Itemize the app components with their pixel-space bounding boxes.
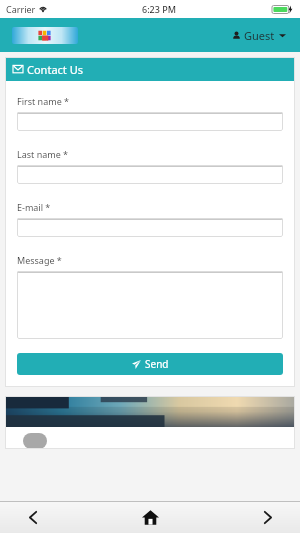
button[interactable]: Home — [134, 501, 166, 533]
button[interactable]: Send — [17, 353, 283, 375]
staticText: First name * — [17, 95, 70, 107]
staticText: E-mail * — [17, 201, 51, 213]
button[interactable]: Guest — [228, 24, 290, 47]
staticText: 6:23 PM — [142, 3, 176, 15]
button[interactable] — [5, 396, 295, 449]
button[interactable]: Home logo — [12, 27, 78, 44]
button[interactable]: Back — [18, 502, 48, 532]
button[interactable]: Contact Us — [5, 57, 295, 81]
staticText: Carrier — [6, 3, 36, 15]
button[interactable]: Text field — [17, 165, 283, 184]
button[interactable]: Text field — [17, 112, 283, 131]
staticText: Last name * — [17, 148, 69, 160]
button[interactable]: Text field — [17, 218, 283, 237]
button[interactable]: Text field — [17, 271, 283, 339]
staticText: Message * — [17, 254, 62, 266]
staticText: Guest — [244, 28, 275, 43]
button[interactable]: Forward — [252, 502, 282, 532]
staticText: Contact Us — [27, 62, 83, 77]
staticText: Send — [145, 357, 169, 371]
